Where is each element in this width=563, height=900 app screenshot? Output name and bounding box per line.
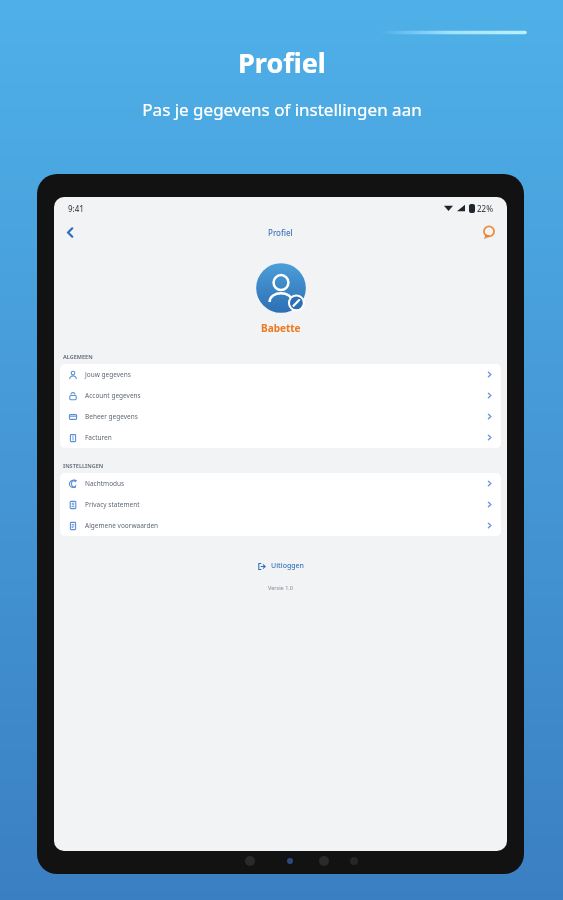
button[interactable]: Jouw gegevens: [60, 364, 501, 385]
staticText: 22%: [477, 203, 493, 214]
button[interactable]: Algemene voorwaarden: [60, 515, 501, 536]
staticText: ALGEMEEN: [63, 353, 93, 360]
button[interactable]: Nachtmodus: [60, 473, 501, 494]
button[interactable]: Beheer gegevens: [60, 406, 501, 427]
staticText: Jouw gegevens: [85, 370, 131, 379]
staticText: Beheer gegevens: [85, 412, 138, 421]
staticText: Uitloggen: [271, 561, 304, 571]
button[interactable]: Uitloggen: [251, 558, 310, 574]
button[interactable]: Account gegevens: [60, 385, 501, 406]
staticText: Babette: [261, 321, 301, 335]
staticText: Privacy statement: [85, 500, 140, 509]
button[interactable]: Facturen: [60, 427, 501, 448]
button[interactable]: Terug: [60, 222, 80, 242]
button[interactable]: Privacy statement: [60, 494, 501, 515]
staticText: 9:41: [68, 203, 84, 214]
staticText: Profiel: [238, 44, 326, 81]
staticText: Account gegevens: [85, 391, 141, 400]
button[interactable]: Chat: [479, 222, 499, 242]
staticText: Profiel: [268, 227, 293, 238]
staticText: INSTELLINGEN: [63, 462, 104, 469]
staticText: Algemene voorwaarden: [85, 521, 159, 530]
staticText: Pas je gegevens of instellingen aan: [142, 98, 422, 121]
button[interactable]: Profielfoto bewerken: [254, 261, 308, 315]
staticText: Versie 1.0: [268, 584, 293, 591]
staticText: Facturen: [85, 433, 112, 442]
staticText: Nachtmodus: [85, 479, 125, 488]
